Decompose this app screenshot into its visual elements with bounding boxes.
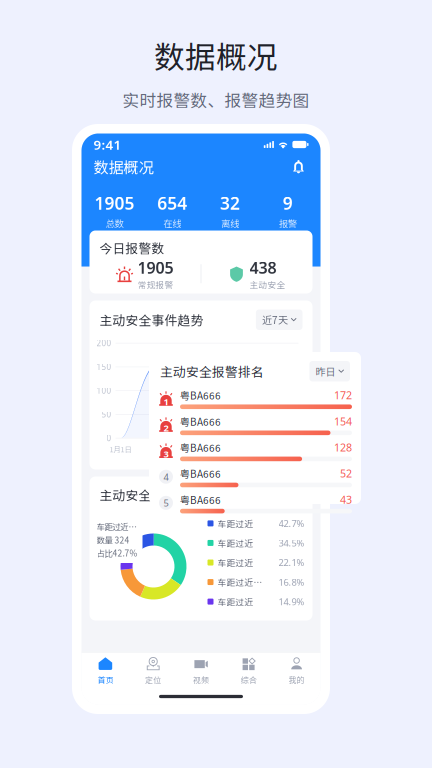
staticText: 总数 bbox=[105, 216, 123, 230]
staticText: 报警 bbox=[279, 216, 297, 230]
staticText: 0 bbox=[106, 433, 111, 443]
staticText: 在线 bbox=[163, 216, 181, 230]
staticText: 1月2日 bbox=[166, 444, 188, 454]
staticText: 数量 324 bbox=[96, 534, 129, 546]
staticText: 5 bbox=[163, 497, 168, 509]
staticText: 实时报警数、报警趋势图 bbox=[122, 87, 309, 111]
staticText: 首页 bbox=[97, 674, 113, 685]
staticText: 654 bbox=[157, 191, 187, 214]
staticText: 主动安全 bbox=[249, 278, 285, 291]
staticText: 1905 bbox=[137, 257, 173, 278]
staticText: 近7天 bbox=[262, 312, 288, 327]
staticText: 昨日 bbox=[315, 364, 335, 378]
button[interactable]: 首页 bbox=[81, 652, 129, 688]
staticText: 154 bbox=[334, 414, 352, 428]
staticText: 常规报警 bbox=[137, 278, 173, 291]
staticText: 主动安全报警类型占比 bbox=[99, 485, 229, 504]
button[interactable]: 近7天 bbox=[256, 309, 302, 330]
staticText: 粤BA666 bbox=[180, 440, 221, 455]
staticText: 粤BA666 bbox=[180, 466, 221, 481]
staticText: 今日报警数 bbox=[99, 238, 164, 257]
staticText: 14.9% bbox=[278, 595, 304, 608]
staticText: 车距过近… bbox=[96, 520, 136, 533]
staticText: 9:41 bbox=[93, 136, 121, 153]
staticText: 占比42.7% bbox=[96, 547, 137, 559]
staticText: 100 bbox=[96, 385, 111, 396]
staticText: 3 bbox=[163, 448, 168, 460]
staticText: 车距过近 bbox=[217, 595, 253, 608]
staticText: 34.5% bbox=[278, 537, 304, 549]
staticText: 粤BA666 bbox=[180, 414, 221, 429]
staticText: 172 bbox=[334, 388, 352, 402]
staticText: 9 bbox=[283, 191, 293, 214]
staticText: 50 bbox=[101, 409, 111, 420]
staticText: 主动安全事件趋势 bbox=[99, 311, 203, 329]
staticText: 数据概况 bbox=[154, 33, 278, 77]
button[interactable]: 昨日 bbox=[309, 361, 350, 381]
staticText: 数据概况 bbox=[93, 155, 153, 178]
button[interactable]: 综合 bbox=[225, 652, 273, 688]
staticText: 离线 bbox=[221, 216, 239, 230]
staticText: 综合 bbox=[241, 674, 257, 685]
staticText: 粤BA666 bbox=[180, 492, 221, 507]
staticText: 150 bbox=[96, 362, 111, 372]
staticText: 车距过近… bbox=[217, 576, 262, 588]
staticText: 22.1% bbox=[278, 556, 304, 569]
staticText: 4 bbox=[163, 471, 168, 483]
staticText: 我的 bbox=[289, 674, 305, 685]
staticText: 视频 bbox=[193, 674, 209, 685]
staticText: 车距过近 bbox=[217, 517, 253, 530]
staticText: 1月1日 bbox=[109, 444, 131, 454]
staticText: 1 bbox=[163, 395, 168, 408]
button[interactable]: 通知 bbox=[288, 156, 308, 176]
button[interactable]: 我的 bbox=[273, 652, 320, 688]
staticText: 200 bbox=[96, 338, 111, 348]
staticText: 车距过近 bbox=[217, 537, 253, 549]
staticText: 52 bbox=[340, 466, 352, 481]
staticText: 2 bbox=[163, 422, 168, 434]
button[interactable]: 视频 bbox=[177, 652, 225, 688]
staticText: 438 bbox=[249, 257, 276, 278]
staticText: 1905 bbox=[94, 191, 134, 214]
staticText: 32 bbox=[220, 191, 240, 214]
staticText: 42.7% bbox=[278, 517, 304, 530]
staticText: 粤BA666 bbox=[180, 388, 221, 402]
staticText: 定位 bbox=[145, 674, 161, 685]
staticText: 主动安全报警排名 bbox=[160, 362, 264, 380]
staticText: 16.8% bbox=[278, 576, 304, 588]
staticText: 车距过近 bbox=[217, 556, 253, 569]
staticText: 128 bbox=[334, 440, 352, 454]
staticText: 43 bbox=[340, 492, 352, 507]
button[interactable]: 定位 bbox=[129, 652, 177, 688]
